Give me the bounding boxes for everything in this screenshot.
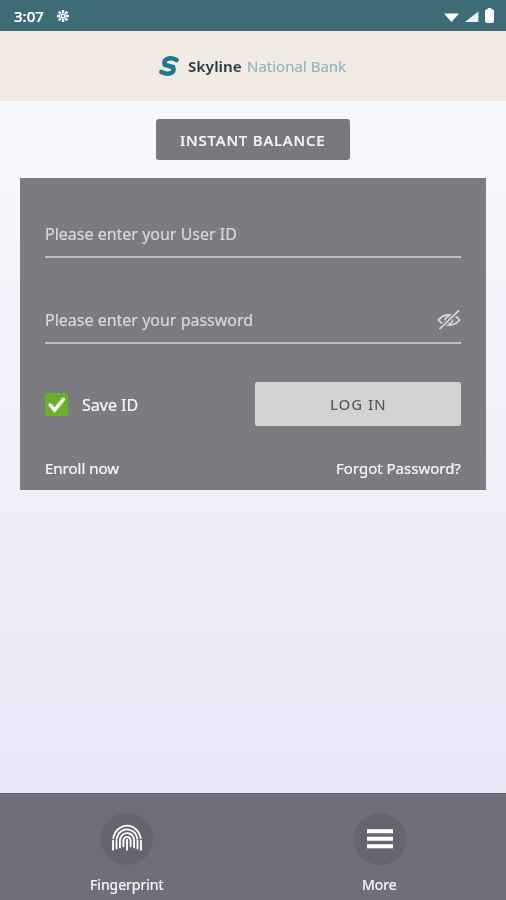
- staticText: 3:07: [14, 6, 44, 26]
- staticText: Forgot Password?: [336, 458, 461, 478]
- button[interactable]: Forgot Password?: [336, 458, 461, 478]
- button[interactable]: Fingerprint: [0, 801, 253, 894]
- button[interactable]: More: [253, 801, 506, 894]
- other: Fingerprint: [112, 824, 142, 854]
- staticText: More: [362, 875, 397, 894]
- other: More: [367, 826, 393, 852]
- staticText: National Bank: [247, 56, 347, 76]
- button[interactable]: LOG IN: [255, 382, 461, 426]
- staticText: INSTANT BALANCE: [180, 130, 326, 150]
- button[interactable]: Save ID: [45, 393, 139, 416]
- staticText: Skyline: [188, 56, 242, 76]
- staticText: Save ID: [82, 394, 139, 416]
- staticText: Please enter your password: [45, 309, 254, 331]
- button[interactable]: Enroll now: [45, 458, 120, 478]
- staticText: LOG IN: [330, 394, 387, 414]
- button[interactable]: INSTANT BALANCE: [156, 119, 350, 160]
- button[interactable]: Show password: [437, 308, 461, 332]
- staticText: Enroll now: [45, 458, 120, 478]
- staticText: Please enter your User ID: [45, 223, 237, 245]
- staticText: Fingerprint: [90, 875, 164, 894]
